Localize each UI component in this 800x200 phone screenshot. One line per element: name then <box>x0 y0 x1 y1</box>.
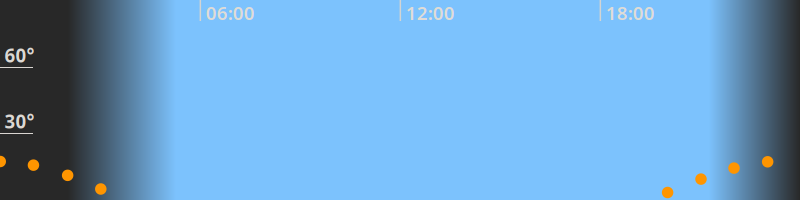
staticText: 30° <box>5 109 35 134</box>
staticText: 06:00 <box>206 0 255 25</box>
staticText: 18:00 <box>606 0 655 25</box>
staticText: 12:00 <box>406 0 455 25</box>
staticText: 60° <box>5 43 35 68</box>
